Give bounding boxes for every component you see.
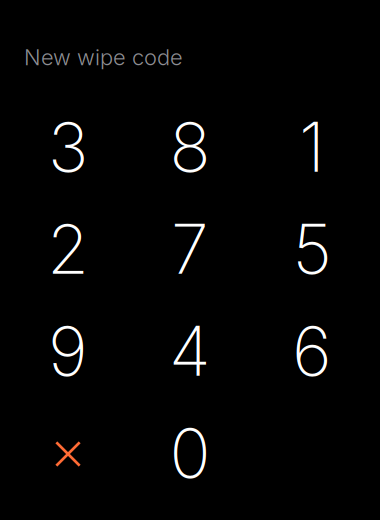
staticText: 9: [48, 310, 88, 392]
button[interactable]: 4: [129, 300, 251, 402]
button[interactable]: 9: [7, 300, 129, 402]
staticText: 5: [292, 208, 331, 290]
button[interactable]: 8: [129, 96, 251, 198]
button[interactable]: 2: [7, 198, 129, 300]
button[interactable]: 3: [7, 96, 129, 198]
button[interactable]: 0: [129, 402, 251, 504]
staticText: 6: [292, 310, 332, 392]
staticText: 4: [169, 310, 211, 392]
button[interactable]: 6: [251, 300, 373, 402]
staticText: 2: [47, 208, 89, 290]
staticText: 3: [48, 106, 88, 188]
staticText: 8: [169, 106, 210, 188]
staticText: 1: [299, 106, 325, 188]
button[interactable]: 1: [251, 96, 373, 198]
button[interactable]: 7: [129, 198, 251, 300]
staticText: New wipe code: [24, 44, 183, 71]
button[interactable]: 5: [251, 198, 373, 300]
staticText: 0: [169, 412, 210, 494]
staticText: 7: [171, 208, 209, 290]
button[interactable]: Delete: [7, 402, 129, 504]
